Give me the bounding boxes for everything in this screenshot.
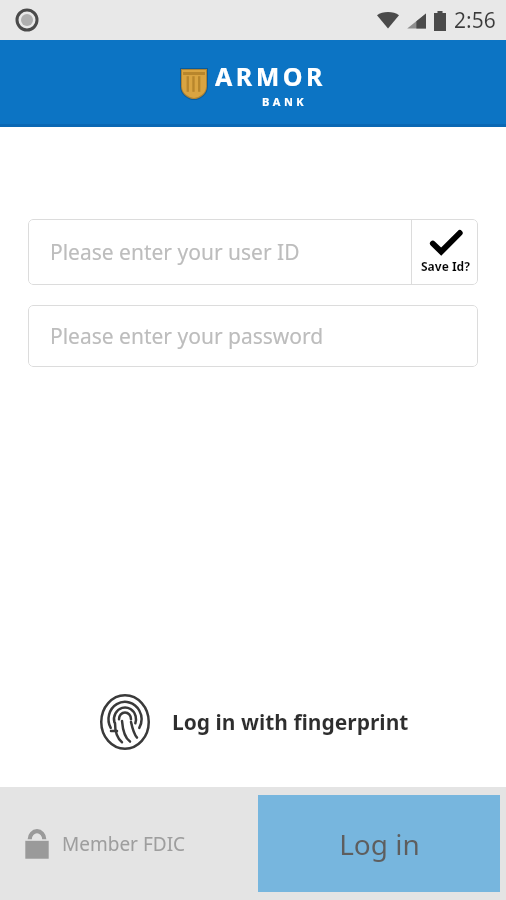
- button[interactable]: Member FDIC: [16, 820, 194, 868]
- staticText: Log in: [339, 825, 420, 863]
- button[interactable]: Fingerprint: [96, 690, 413, 754]
- staticText: ARMOR: [215, 59, 326, 93]
- button[interactable]: Log in: [258, 795, 500, 892]
- staticText: 2:56: [454, 6, 496, 35]
- staticText: Save Id?: [421, 258, 470, 274]
- staticText: Please enter your password: [50, 322, 324, 351]
- staticText: BANK: [262, 94, 308, 109]
- staticText: Member FDIC: [62, 831, 186, 857]
- button[interactable]: Save Id: [412, 219, 478, 285]
- staticText: Please enter your user ID: [50, 238, 300, 267]
- staticText: Log in with fingerprint: [172, 708, 409, 737]
- button[interactable]: Please enter your user ID: [28, 219, 478, 285]
- other: Fingerprint: [100, 694, 150, 750]
- button[interactable]: Please enter your password: [28, 305, 478, 367]
